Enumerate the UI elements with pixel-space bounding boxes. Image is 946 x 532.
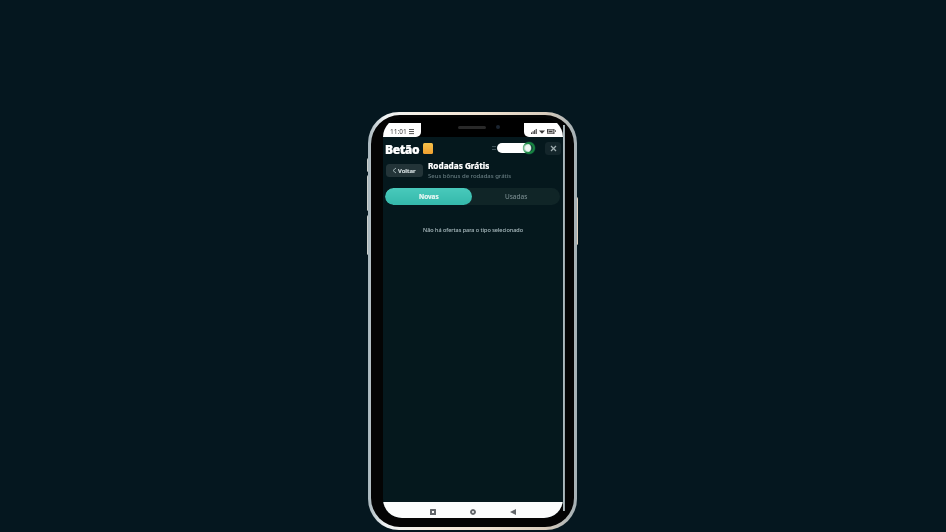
button[interactable]: Voltar bbox=[506, 506, 520, 518]
button[interactable]: Recentes bbox=[426, 506, 440, 518]
staticText: Rodadas Grátis bbox=[428, 160, 490, 171]
staticText: Novas bbox=[419, 192, 439, 201]
button[interactable]: Voltar bbox=[386, 164, 423, 177]
button[interactable]: Usadas bbox=[472, 188, 560, 205]
staticText: Voltar bbox=[398, 167, 416, 175]
button[interactable]: Saldo bbox=[497, 143, 531, 153]
staticText: Betão bbox=[385, 141, 420, 155]
staticText: Usadas bbox=[505, 192, 528, 201]
staticText: Seus bônus de rodadas grátis bbox=[428, 172, 512, 180]
staticText: Não há ofertas para o tipo selecionado bbox=[383, 226, 563, 233]
button[interactable]: Fechar bbox=[545, 142, 561, 155]
staticText: 11:01 bbox=[390, 127, 407, 136]
button[interactable]: Novas bbox=[385, 188, 472, 205]
button[interactable]: Início bbox=[466, 506, 480, 518]
